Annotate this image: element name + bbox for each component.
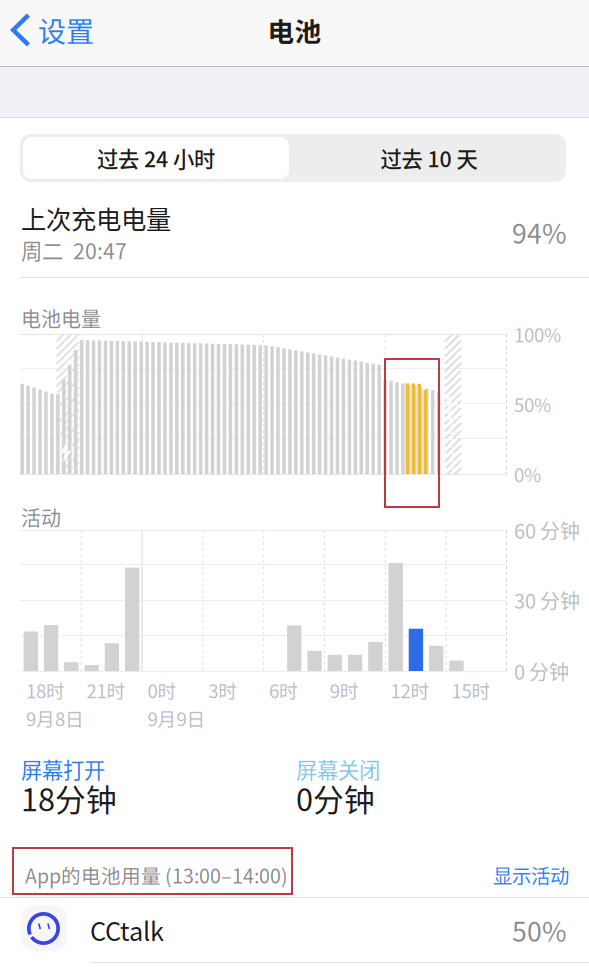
button[interactable]: CCtalk	[0, 898, 589, 962]
staticText: 0分钟	[296, 776, 375, 820]
staticText: 6时	[269, 676, 298, 703]
staticText: 94%	[512, 213, 567, 251]
staticText: 过去 10 天	[380, 143, 477, 173]
staticText: 活动	[21, 502, 61, 531]
staticText: 3时	[208, 676, 237, 703]
staticText: 屏幕关闭	[296, 754, 380, 784]
staticText: App的电池用量 (13:00–14:00)	[25, 861, 288, 889]
staticText: 电池电量	[21, 303, 101, 332]
staticText: 0时	[147, 676, 176, 703]
staticText: 9月9日	[147, 704, 205, 731]
staticText: 30 分钟	[514, 585, 580, 614]
staticText: 9时	[330, 676, 359, 703]
staticText: 100%	[514, 320, 561, 347]
staticText: 9月8日	[26, 704, 84, 731]
staticText: 50%	[514, 390, 551, 417]
staticText: 0%	[514, 460, 541, 487]
staticText: 上次充电电量	[21, 200, 171, 236]
button[interactable]: 设置	[0, 0, 108, 60]
staticText: 过去 24 小时	[97, 143, 215, 173]
button[interactable]: 显示活动	[449, 852, 569, 898]
staticText: 设置	[38, 10, 94, 50]
staticText: 21时	[87, 676, 126, 703]
staticText: 0 分钟	[514, 656, 569, 685]
staticText: 18分钟	[21, 776, 117, 820]
staticText: 18时	[26, 676, 65, 703]
staticText: CCtalk	[90, 912, 164, 948]
staticText: 15时	[451, 676, 490, 703]
staticText: 电池	[267, 11, 321, 49]
staticText: 显示活动	[493, 861, 569, 889]
button[interactable]: 过去 24 小时	[20, 134, 292, 182]
staticText: 周二 20:47	[21, 235, 127, 265]
staticText: 50%	[512, 911, 567, 949]
staticText: 60 分钟	[514, 515, 580, 544]
staticText: 12时	[391, 676, 430, 703]
button[interactable]: 过去 10 天	[292, 134, 566, 182]
staticText: 屏幕打开	[21, 754, 105, 784]
